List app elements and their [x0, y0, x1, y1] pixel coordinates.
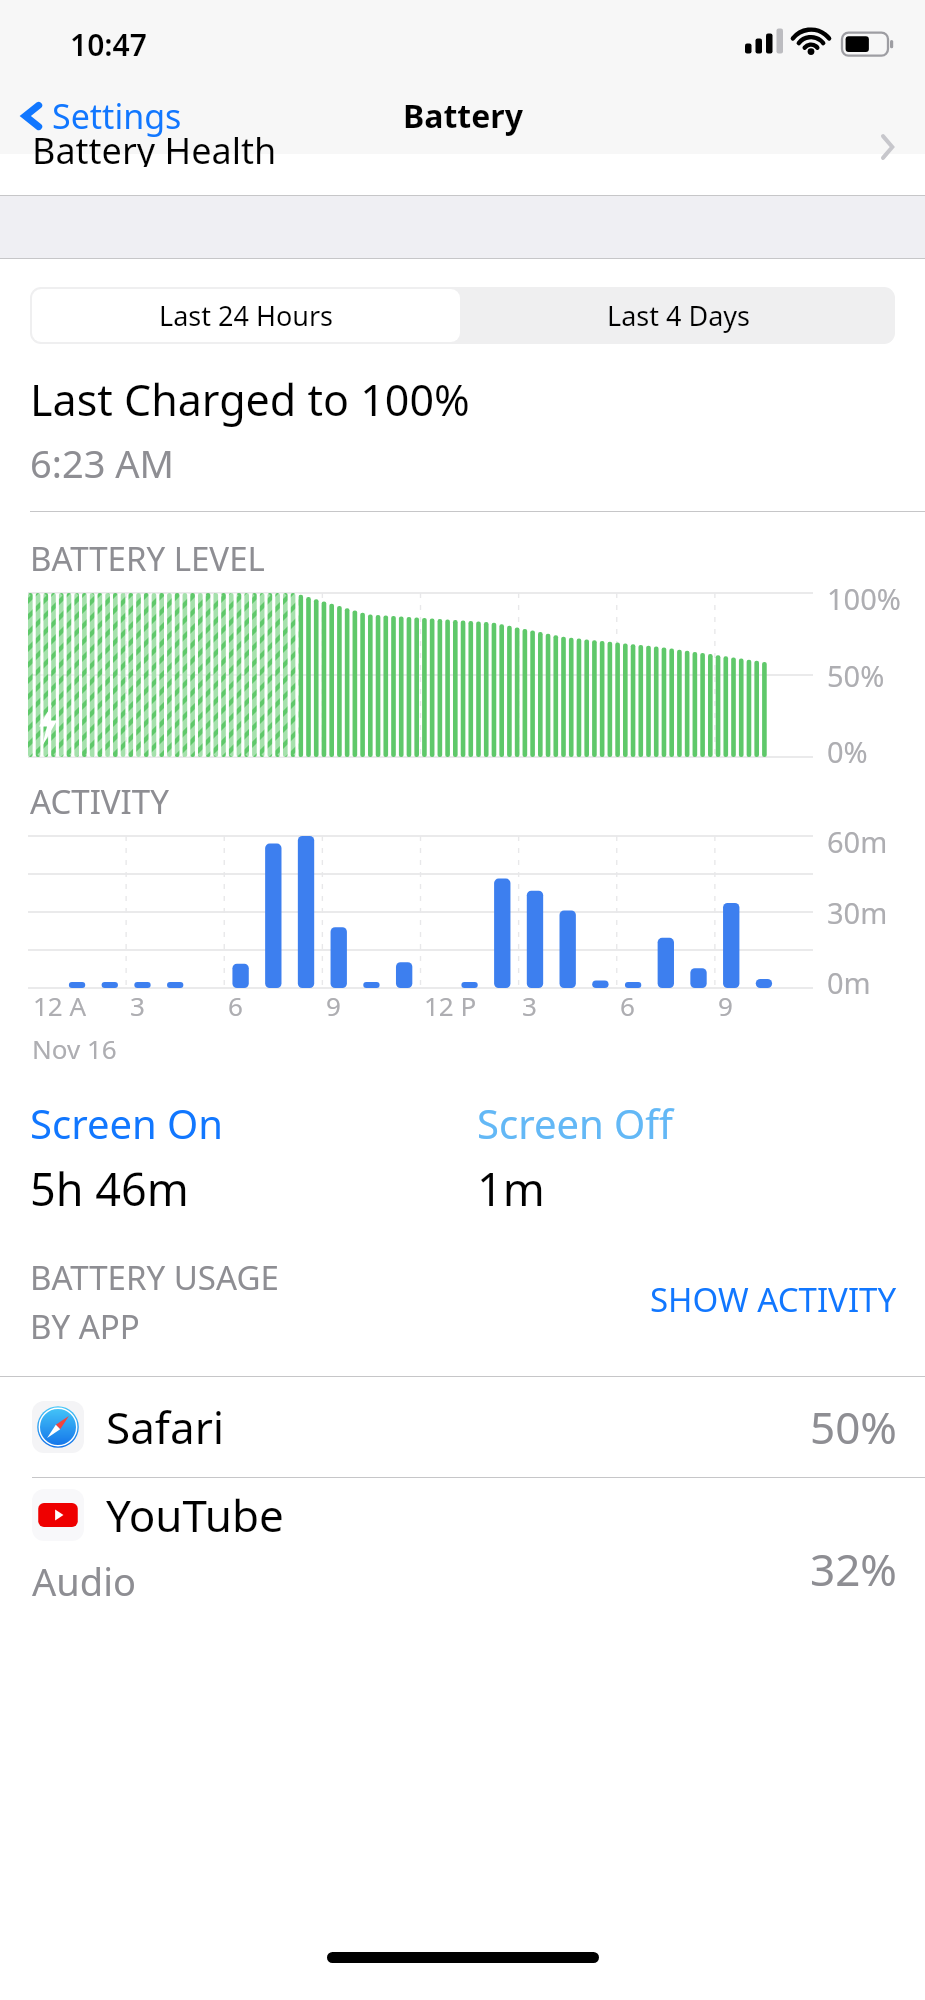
staticText: 100% — [827, 579, 901, 618]
staticText: SHOW ACTIVITY — [650, 1277, 897, 1322]
staticText: 3 — [130, 988, 145, 1023]
staticText: Screen On — [30, 1096, 224, 1150]
staticText: 6:23 AM — [30, 437, 175, 489]
staticText: Last 24 Hours — [159, 297, 334, 334]
staticText: 50% — [827, 656, 885, 695]
button[interactable]: YouTube — [0, 1478, 925, 1614]
staticText: 12 P — [424, 988, 477, 1023]
staticText: 0m — [827, 963, 871, 1002]
staticText: 6 — [228, 988, 243, 1023]
staticText: BATTERY LEVEL — [30, 536, 265, 581]
staticText: 6 — [620, 988, 635, 1023]
staticText: 3 — [522, 988, 537, 1023]
staticText: ACTIVITY — [30, 779, 169, 824]
staticText: 50% — [810, 1397, 897, 1457]
staticText: YouTube — [106, 1485, 284, 1545]
staticText: Settings — [52, 93, 182, 139]
other: Safari — [32, 1401, 84, 1453]
staticText: 0% — [827, 732, 868, 771]
staticText: BATTERY USAGE BY APP — [30, 1255, 650, 1348]
staticText: Safari — [106, 1397, 810, 1457]
staticText: Nov 16 — [32, 1031, 117, 1066]
other: YouTube — [32, 1489, 84, 1541]
staticText: Battery — [403, 94, 523, 138]
staticText: Battery Health — [32, 126, 277, 167]
staticText: 5h 46m — [30, 1158, 189, 1219]
staticText: 10:47 — [70, 24, 147, 65]
button[interactable]: Battery Health — [0, 154, 925, 195]
staticText: 30m — [827, 893, 888, 932]
staticText: 12 A — [33, 988, 87, 1023]
staticText: Last 4 Days — [607, 297, 751, 334]
staticText: Screen Off — [477, 1096, 673, 1150]
staticText: 32% — [810, 1539, 897, 1599]
staticText: 9 — [718, 988, 733, 1023]
button[interactable]: Settings — [0, 85, 196, 147]
staticText: 60m — [827, 822, 888, 861]
staticText: 9 — [326, 988, 341, 1023]
button[interactable]: SHOW ACTIVITY — [650, 1255, 897, 1322]
staticText: Last Charged to 100% — [30, 370, 470, 429]
staticText: Audio — [32, 1555, 136, 1607]
button[interactable]: Safari — [0, 1377, 925, 1477]
button[interactable]: Last 24 Hours — [32, 289, 460, 342]
button[interactable]: Last 4 Days — [462, 287, 895, 344]
staticText: 1m — [477, 1158, 545, 1219]
